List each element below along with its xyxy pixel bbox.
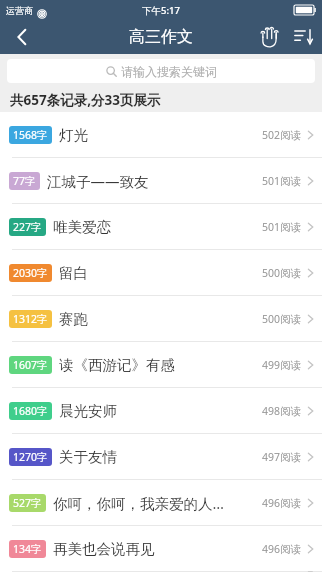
staticText: 请输入搜索关键词 (121, 64, 217, 79)
staticText: 496阅读 (262, 542, 302, 556)
staticText: 灯光 (59, 126, 258, 144)
staticText: 2030字 (13, 266, 48, 280)
staticText: 227字 (13, 220, 42, 234)
staticText: 赛跑 (59, 310, 258, 328)
staticText: 501阅读 (262, 174, 302, 188)
button[interactable]: 77字 (0, 158, 322, 203)
staticText: 1680字 (13, 404, 48, 418)
staticText: 1312字 (13, 312, 48, 326)
staticText: 499阅读 (262, 358, 302, 372)
staticText: 527字 (13, 496, 42, 510)
staticText: 晨光安师 (59, 402, 258, 420)
button[interactable]: 227字 (0, 204, 322, 249)
staticText: 江城子——致友 (47, 171, 258, 191)
staticText: 498阅读 (262, 404, 302, 418)
button[interactable]: Back (0, 20, 44, 54)
staticText: 留白 (59, 264, 258, 282)
staticText: 共657条记录,分33页展示 (10, 91, 161, 109)
staticText: 501阅读 (262, 220, 302, 234)
button[interactable]: 1270字 (0, 434, 322, 479)
staticText: 高三作文 (129, 27, 193, 47)
staticText: 1607字 (13, 358, 48, 372)
button[interactable]: Hand (252, 20, 286, 54)
staticText: 77字 (13, 174, 36, 188)
staticText: 1568字 (13, 128, 48, 142)
staticText: 500阅读 (262, 312, 302, 326)
staticText: 496阅读 (262, 496, 302, 510)
staticText: 读《西游记》有感 (59, 356, 258, 374)
staticText: 502阅读 (262, 128, 302, 142)
button[interactable]: 1312字 (0, 296, 322, 341)
staticText: 运营商 (6, 5, 33, 16)
staticText: 你呵，你呵，我亲爱的人… (53, 493, 258, 513)
staticText: 497阅读 (262, 450, 302, 464)
button[interactable]: 请输入搜索关键词 (7, 59, 315, 83)
button[interactable]: 2030字 (0, 250, 322, 295)
staticText: 500阅读 (262, 266, 302, 280)
staticText: 134字 (13, 542, 42, 556)
staticText: 唯美爱恋 (53, 218, 258, 236)
button[interactable]: 1680字 (0, 388, 322, 433)
button[interactable]: 1568字 (0, 112, 322, 157)
staticText: 再美也会说再见 (53, 540, 258, 558)
button[interactable]: 527字 (0, 480, 322, 525)
button[interactable]: 134字 (0, 526, 322, 571)
button[interactable]: Sort (286, 20, 322, 54)
staticText: 关于友情 (59, 448, 258, 466)
staticText: 1270字 (13, 450, 48, 464)
staticText: 下午5:17 (142, 4, 180, 17)
button[interactable]: 1607字 (0, 342, 322, 387)
